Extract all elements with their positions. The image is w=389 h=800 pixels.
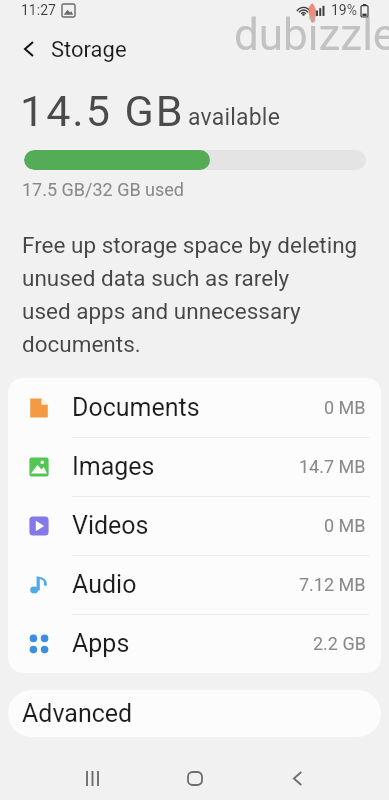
button[interactable]: Home (172, 758, 218, 798)
staticText: 19% (331, 2, 357, 18)
staticText: 0 MB (324, 515, 366, 536)
button[interactable]: Advanced (8, 690, 381, 737)
staticText: Documents (72, 393, 200, 422)
staticText: Storage (51, 37, 127, 63)
staticText: Videos (72, 511, 149, 540)
staticText: dubizzle (234, 9, 389, 61)
staticText: Apps (72, 629, 130, 658)
staticText: Advanced (22, 699, 133, 728)
staticText: 2.2 GB (313, 633, 366, 654)
staticText: 14.5 GB (20, 86, 185, 136)
button[interactable]: Images (8, 437, 381, 496)
staticText: 11:27 (21, 2, 56, 18)
button[interactable]: Documents (8, 378, 381, 437)
staticText: Free up storage space by deleting unused… (22, 227, 358, 359)
staticText: available (188, 104, 281, 131)
button[interactable]: Audio (8, 555, 381, 614)
staticText: Images (72, 452, 155, 481)
button[interactable]: Recent apps (69, 758, 115, 798)
button[interactable]: Back (274, 758, 320, 798)
button[interactable]: Videos (8, 496, 381, 555)
staticText: 0 MB (324, 397, 366, 418)
button[interactable]: Apps (8, 614, 381, 673)
staticText: 14.7 MB (299, 456, 366, 477)
staticText: Audio (72, 570, 137, 599)
button[interactable]: Back (7, 30, 51, 68)
staticText: 17.5 GB/32 GB used (22, 179, 185, 200)
staticText: 7.12 MB (299, 574, 366, 595)
